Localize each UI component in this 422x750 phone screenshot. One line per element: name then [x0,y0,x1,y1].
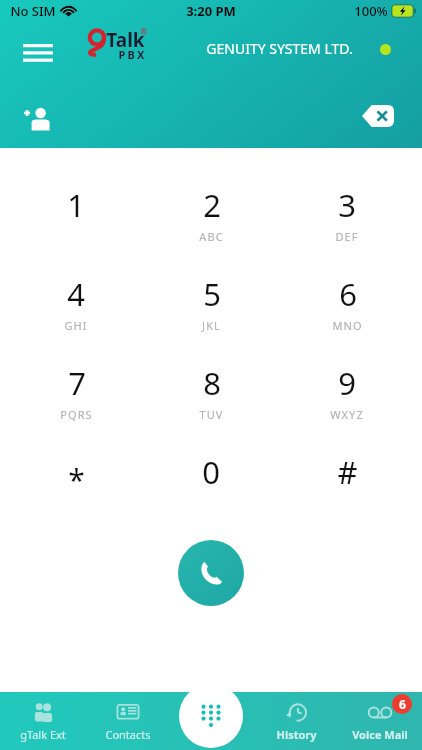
staticText: 4 [67,273,85,315]
staticText: History [276,727,317,742]
staticText: WXYZ [330,407,364,422]
staticText: 1 [67,184,85,226]
button[interactable]: Call [178,540,244,606]
button[interactable]: * [16,445,136,534]
button[interactable]: 7 [16,356,136,445]
button[interactable]: Add contact [14,96,60,142]
staticText: Contacts [105,727,151,742]
staticText: 6 [399,696,406,712]
staticText: 3:20 PM [186,2,236,20]
staticText: ABC [199,229,224,244]
button[interactable]: 0 [151,445,271,534]
staticText: MNO [332,318,363,333]
staticText: 2 [203,184,221,226]
button[interactable]: Dialpad [179,684,243,748]
staticText: 6 [339,273,357,315]
button[interactable]: 9 [287,356,407,445]
staticText: 5 [203,273,221,315]
staticText: 7 [68,362,86,404]
staticText: 100% [354,2,388,20]
button[interactable]: 4 [16,267,136,356]
button[interactable]: # [287,445,407,534]
staticText: 3 [338,184,356,226]
staticText: ® [140,26,147,37]
button[interactable]: Contacts [85,692,170,750]
staticText: DEF [335,229,359,244]
staticText: PBX [118,47,147,62]
staticText: 0 [202,451,220,493]
button[interactable]: 6 [287,267,407,356]
staticText: Talk [106,27,145,53]
staticText: gTalk Ext [20,727,66,742]
staticText: 8 [203,362,221,404]
button[interactable]: 5 [151,267,271,356]
button[interactable]: 3 [287,178,407,267]
staticText: GENUITY SYSTEM LTD. [206,39,353,58]
button[interactable]: Backspace [356,98,400,134]
staticText: 9 [338,362,356,404]
staticText: TUV [199,407,224,422]
staticText: PQRS [60,407,93,422]
button[interactable]: gTalk Ext [0,692,85,750]
button[interactable]: 8 [151,356,271,445]
button[interactable]: Voice Mail [338,692,422,750]
button[interactable]: 2 [151,178,271,267]
button[interactable]: History [254,692,338,750]
staticText: * [68,459,85,500]
button[interactable]: Menu [16,32,60,76]
staticText: No SIM [10,2,56,20]
staticText: GHI [64,318,88,333]
staticText: # [337,451,358,493]
staticText: JKL [202,318,221,333]
staticText: Voice Mail [352,727,408,742]
button[interactable]: 1 [16,178,136,267]
